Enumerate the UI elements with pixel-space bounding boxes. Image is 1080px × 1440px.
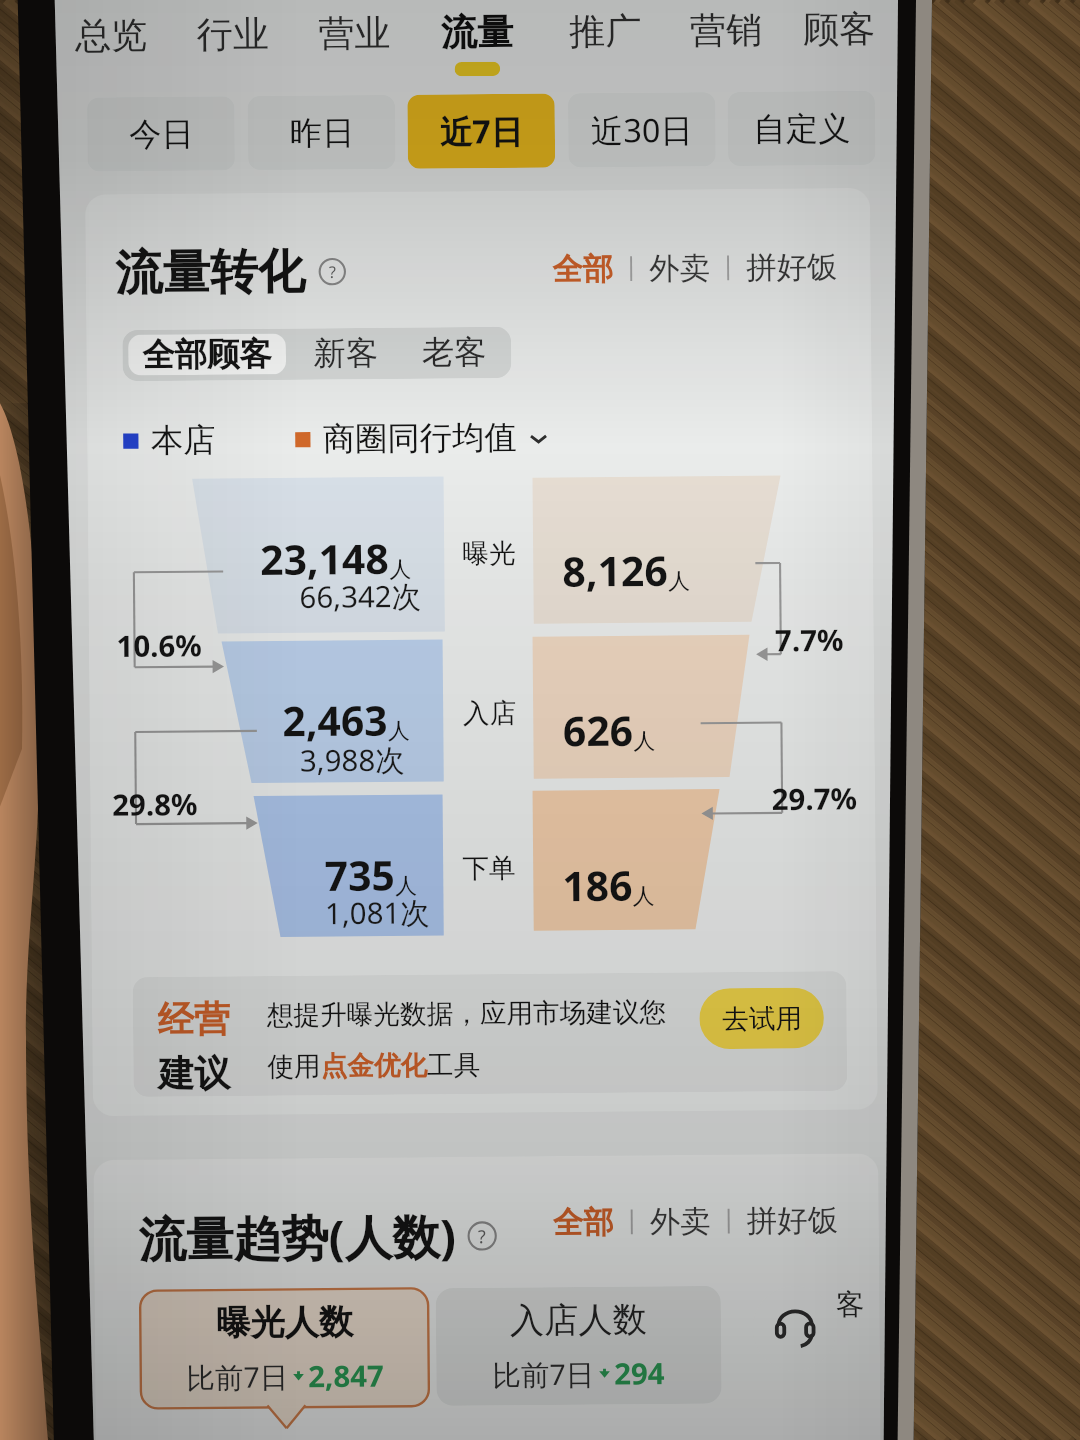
staticText: 推广 bbox=[569, 8, 642, 54]
staticText: 7.7% bbox=[775, 619, 844, 660]
staticText: 10.6% bbox=[116, 625, 202, 665]
staticText: 23,148 bbox=[260, 530, 390, 587]
button[interactable]: 全部 bbox=[553, 1203, 614, 1241]
staticText: 曝光 bbox=[462, 537, 516, 570]
button[interactable]: 流量 bbox=[416, 9, 538, 90]
staticText: 人 bbox=[668, 567, 690, 595]
staticText: 人 bbox=[389, 556, 411, 583]
button[interactable]: 推广 bbox=[544, 8, 667, 89]
staticText: 总览 bbox=[75, 12, 147, 59]
staticText: 人 bbox=[395, 872, 417, 900]
staticText: 近7日 bbox=[440, 109, 524, 153]
staticText: 点金优化 bbox=[320, 1049, 427, 1083]
staticText: 营销 bbox=[690, 7, 762, 53]
staticText: 626 bbox=[563, 702, 633, 759]
button[interactable]: 今日 bbox=[87, 96, 235, 172]
staticText: 比前7日 bbox=[186, 1357, 289, 1397]
staticText: 经营 bbox=[157, 996, 230, 1042]
staticText: 294 bbox=[614, 1353, 666, 1393]
staticText: 29.7% bbox=[771, 778, 857, 819]
staticText: 顾客 bbox=[803, 6, 875, 52]
staticText: 曝光人数 bbox=[216, 1300, 353, 1344]
staticText: 下单 bbox=[462, 851, 516, 885]
button[interactable]: 行业 bbox=[172, 11, 294, 92]
button[interactable]: 入店人数 bbox=[436, 1286, 722, 1406]
staticText: 3,988次 bbox=[300, 739, 405, 780]
button[interactable]: 昨日 bbox=[248, 95, 395, 170]
staticText: 人 bbox=[633, 727, 655, 755]
button[interactable]: 总览 bbox=[50, 12, 172, 93]
staticText: 客 bbox=[836, 1286, 864, 1323]
staticText: 流量转化 bbox=[115, 242, 305, 303]
button[interactable]: 营业 bbox=[293, 10, 416, 91]
staticText: 行业 bbox=[196, 11, 269, 57]
staticText: 想提升曝光数据，应用市场建议您 bbox=[267, 995, 666, 1032]
button[interactable]: 外卖 bbox=[650, 1202, 711, 1241]
staticText: 人 bbox=[633, 882, 655, 910]
button[interactable]: 拼好饭 bbox=[747, 1201, 838, 1240]
button[interactable]: 自定义 bbox=[727, 91, 875, 166]
staticText: 使用 bbox=[267, 1050, 321, 1083]
staticText: 186 bbox=[562, 857, 633, 914]
staticText: 全部顾客 bbox=[142, 333, 272, 375]
button[interactable]: 说明 bbox=[318, 258, 346, 286]
button[interactable]: 拼好饭 bbox=[746, 248, 838, 287]
staticText: 去试用 bbox=[722, 1002, 802, 1036]
staticText: 本店 bbox=[151, 419, 216, 461]
staticText: 2,463 bbox=[282, 692, 388, 749]
staticText: 今日 bbox=[129, 114, 194, 155]
staticText: ? bbox=[478, 1224, 487, 1249]
button[interactable]: 营销 bbox=[665, 7, 787, 88]
staticText: ? bbox=[329, 261, 337, 283]
staticText: 1,081次 bbox=[325, 892, 431, 933]
button[interactable]: 近30日 bbox=[568, 92, 716, 167]
button[interactable]: 近7日 bbox=[407, 93, 555, 169]
staticText: 昨日 bbox=[290, 112, 355, 154]
staticText: 入店人数 bbox=[510, 1298, 647, 1342]
button[interactable]: 说明 bbox=[467, 1221, 497, 1251]
staticText: 自定义 bbox=[753, 108, 851, 150]
button[interactable]: 新客 bbox=[297, 332, 394, 374]
staticText: 人 bbox=[388, 717, 410, 745]
staticText: 比前7日 bbox=[492, 1354, 595, 1394]
staticText: 2,847 bbox=[308, 1355, 384, 1396]
staticText: 商圈同行均值 bbox=[323, 417, 517, 459]
staticText: 8,126 bbox=[562, 542, 668, 599]
button[interactable]: 全部顾客 bbox=[128, 333, 286, 376]
button[interactable]: 外卖 bbox=[649, 249, 710, 287]
button[interactable]: 曝光人数 bbox=[140, 1288, 429, 1408]
button[interactable]: 顾客 bbox=[778, 6, 900, 87]
staticText: 近30日 bbox=[591, 107, 693, 152]
staticText: 入店 bbox=[463, 696, 516, 730]
staticText: 流量 bbox=[441, 9, 513, 55]
staticText: 老客 bbox=[422, 332, 487, 373]
staticText: 新客 bbox=[313, 333, 378, 374]
button[interactable]: 老客 bbox=[405, 331, 503, 373]
staticText: 流量趋势(人数) bbox=[138, 1203, 456, 1271]
staticText: 29.8% bbox=[112, 784, 198, 824]
staticText: 营业 bbox=[318, 10, 391, 56]
button[interactable]: 全部 bbox=[552, 250, 613, 288]
button[interactable]: 展开 bbox=[528, 427, 549, 448]
staticText: 工具 bbox=[427, 1048, 480, 1082]
staticText: 735 bbox=[324, 847, 395, 903]
button[interactable]: 去试用 bbox=[699, 987, 824, 1049]
staticText: 建议 bbox=[158, 1050, 230, 1097]
button[interactable]: 客服 bbox=[752, 1286, 837, 1371]
staticText: 66,342次 bbox=[299, 575, 421, 616]
